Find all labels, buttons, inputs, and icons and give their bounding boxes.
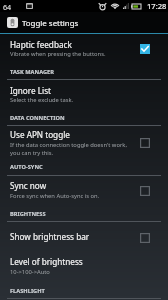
other: Battery bbox=[131, 4, 141, 9]
staticText: Force sync when Auto-sync is on. bbox=[10, 192, 137, 200]
other: Mobile signal bbox=[123, 3, 129, 9]
button[interactable] bbox=[0, 176, 168, 204]
staticText: TASK MANAGER bbox=[10, 68, 54, 76]
button[interactable] bbox=[0, 251, 168, 280]
other: Alarm set bbox=[99, 3, 106, 10]
button[interactable] bbox=[0, 222, 168, 250]
button[interactable] bbox=[0, 35, 168, 62]
button[interactable] bbox=[0, 80, 168, 108]
staticText: DATA CONNECTION bbox=[10, 114, 65, 122]
staticText: Toggle settings bbox=[22, 18, 79, 29]
staticText: BRIGHTNESS bbox=[10, 210, 46, 218]
staticText: 10->100->Auto bbox=[10, 268, 137, 276]
other: Wi-Fi bbox=[111, 3, 119, 9]
staticText: AUTO-SYNC bbox=[10, 163, 43, 171]
button[interactable] bbox=[0, 12, 168, 33]
staticText: FLASHLIGHT bbox=[10, 287, 45, 295]
staticText: 17:28 bbox=[147, 1, 167, 11]
staticText: Level of brightness bbox=[10, 256, 83, 267]
staticText: Sync now bbox=[10, 180, 47, 191]
staticText: Ignore List bbox=[10, 85, 52, 96]
staticText: Use APN toggle bbox=[10, 129, 70, 140]
staticText: Select the exclude task. bbox=[10, 96, 137, 104]
staticText: Haptic feedback bbox=[10, 39, 72, 50]
staticText: If the data connection toggle doesn't wo… bbox=[10, 141, 137, 157]
staticText: Show brightness bar bbox=[10, 231, 90, 242]
button[interactable] bbox=[0, 126, 168, 158]
staticText: 64 bbox=[3, 2, 12, 12]
staticText: Vibrate when pressing the buttons. bbox=[10, 50, 137, 58]
